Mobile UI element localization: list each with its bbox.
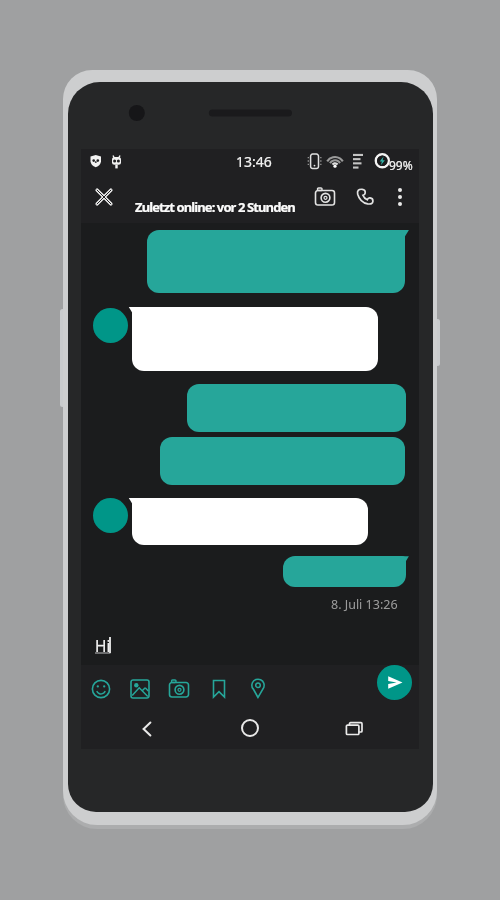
staticText: 13:46: [236, 152, 272, 171]
button[interactable]: [235, 713, 265, 743]
button[interactable]: [132, 714, 162, 744]
staticText: Hi: [95, 635, 111, 656]
button[interactable]: [204, 674, 234, 704]
button[interactable]: [351, 183, 379, 211]
staticText: 99%: [389, 157, 413, 173]
button[interactable]: [243, 674, 273, 704]
staticText: 8. Juli 13:26: [331, 596, 398, 613]
button[interactable]: [187, 384, 406, 432]
button[interactable]: [147, 230, 405, 293]
button[interactable]: [90, 183, 118, 211]
button[interactable]: [283, 556, 406, 587]
button[interactable]: [132, 307, 378, 371]
button[interactable]: [377, 665, 412, 700]
button[interactable]: [93, 308, 128, 343]
staticText: Zuletzt online: vor 2 Stunden: [135, 198, 295, 216]
button[interactable]: [339, 714, 369, 744]
button[interactable]: [311, 183, 339, 211]
button[interactable]: [386, 183, 414, 211]
button[interactable]: [132, 498, 368, 545]
button[interactable]: [160, 437, 405, 485]
button[interactable]: [93, 498, 128, 533]
button[interactable]: [164, 674, 194, 704]
button[interactable]: [125, 674, 155, 704]
button[interactable]: [86, 674, 116, 704]
